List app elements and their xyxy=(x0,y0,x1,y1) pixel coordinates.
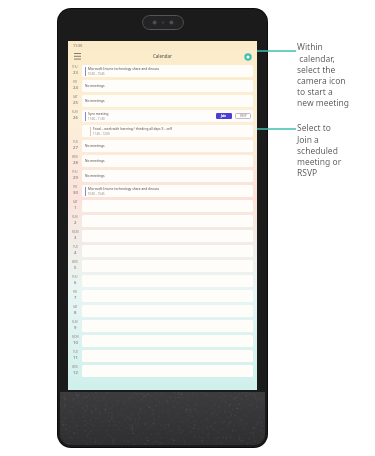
staticText: 4 xyxy=(74,250,77,256)
button[interactable]: No meetings xyxy=(82,140,253,152)
staticText: MON xyxy=(72,230,79,234)
staticText: 25 xyxy=(73,100,78,106)
staticText: TUE xyxy=(73,140,78,144)
staticText: Microsoft Intune technology share and di… xyxy=(88,187,160,191)
button[interactable]: Focal – work with learning / thinking al… xyxy=(82,125,253,137)
button[interactable]: No meetings xyxy=(82,170,253,182)
button[interactable]: WED xyxy=(68,258,257,273)
staticText: SAT xyxy=(73,200,78,204)
button[interactable]: FRI xyxy=(68,78,257,93)
staticText: 28 xyxy=(73,160,78,166)
staticText: SUN xyxy=(72,110,78,114)
button[interactable]: WED xyxy=(68,153,257,168)
staticText: FRI xyxy=(73,80,77,84)
staticText: 27 xyxy=(73,145,78,151)
staticText: No meetings xyxy=(85,84,105,88)
staticText: 24 xyxy=(73,85,78,91)
staticText: 29 xyxy=(73,175,78,181)
staticText: 2 xyxy=(74,220,77,226)
button[interactable]: FRI xyxy=(68,288,257,303)
staticText: 6 xyxy=(74,280,77,286)
staticText: SAT xyxy=(73,95,78,99)
staticText: Join xyxy=(221,114,227,118)
button[interactable]: No meetings xyxy=(82,95,253,107)
staticText: 7 xyxy=(74,295,77,301)
button[interactable]: Menu xyxy=(72,51,83,62)
staticText: 12 xyxy=(73,370,78,376)
button[interactable]: SUN xyxy=(68,213,257,228)
staticText: WED xyxy=(72,155,78,159)
button[interactable]: No meetings xyxy=(82,80,253,92)
button[interactable]: SAT xyxy=(68,198,257,213)
button[interactable]: WED xyxy=(68,363,257,378)
staticText: 23 xyxy=(73,70,78,76)
staticText: Sync meeting xyxy=(88,112,109,116)
staticText: Focal – work with learning / thinking al… xyxy=(93,127,172,131)
staticText: No meetings xyxy=(85,144,105,148)
staticText: 10 xyxy=(73,340,78,346)
staticText: 8 xyxy=(74,310,77,316)
staticText: THU xyxy=(72,170,78,174)
button[interactable]: TUE xyxy=(68,138,257,153)
staticText: Select to Join a scheduled meeting or RS… xyxy=(297,122,342,179)
staticText: Within calendar, select the camera icon … xyxy=(297,41,350,109)
button[interactable]: THU xyxy=(68,168,257,183)
button[interactable]: TUE xyxy=(68,348,257,363)
staticText: No meetings xyxy=(85,159,105,163)
staticText: 10:00 – 10:45 xyxy=(88,72,105,76)
button[interactable]: Focal – work with learning / thinking al… xyxy=(68,123,257,138)
staticText: 11 xyxy=(73,355,78,361)
staticText: Calendar xyxy=(153,53,172,59)
button[interactable]: Start a new meeting with camera xyxy=(242,51,253,62)
staticText: FRI xyxy=(73,290,77,294)
staticText: 11:00 – 11:30 xyxy=(88,117,105,121)
staticText: 1 xyxy=(74,205,77,211)
staticText: THU xyxy=(72,275,78,279)
staticText: SUN xyxy=(72,215,78,219)
staticText: SAT xyxy=(73,305,78,309)
staticText: RSVP xyxy=(240,114,247,118)
staticText: SUN xyxy=(72,320,78,324)
button[interactable]: MON xyxy=(68,333,257,348)
button[interactable]: TUE xyxy=(68,243,257,258)
other: Camera module xyxy=(142,15,184,30)
button[interactable]: THU xyxy=(68,63,257,78)
button[interactable]: SAT xyxy=(68,93,257,108)
staticText: No meetings xyxy=(85,174,105,178)
staticText: 10:00 – 10:45 xyxy=(88,192,105,196)
staticText: 5 xyxy=(74,265,77,271)
staticText: MON xyxy=(72,335,79,339)
staticText: 9 xyxy=(74,325,77,331)
button[interactable]: SAT xyxy=(68,303,257,318)
button[interactable]: Join xyxy=(216,113,232,119)
staticText: 30 xyxy=(73,190,78,196)
staticText: TUE xyxy=(73,350,78,354)
button[interactable]: SUN xyxy=(68,318,257,333)
staticText: 26 xyxy=(73,115,78,121)
button[interactable]: RSVP xyxy=(235,113,251,119)
staticText: WED xyxy=(72,260,78,264)
button[interactable]: MON xyxy=(68,228,257,243)
button[interactable]: SUN xyxy=(68,108,257,123)
button[interactable]: THU xyxy=(68,273,257,288)
staticText: TUE xyxy=(73,245,78,249)
staticText: FRI xyxy=(73,185,77,189)
button[interactable]: FRI xyxy=(68,183,257,198)
button[interactable]: Sync meeting xyxy=(82,110,253,122)
button[interactable]: Microsoft Intune technology share and di… xyxy=(82,185,253,197)
staticText: Microsoft Intune technology share and di… xyxy=(88,67,160,71)
button[interactable]: Microsoft Intune technology share and di… xyxy=(82,65,253,77)
button[interactable]: No meetings xyxy=(82,155,253,167)
